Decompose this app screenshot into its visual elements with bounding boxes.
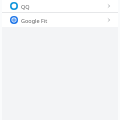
button[interactable]: Open: [106, 17, 112, 23]
button[interactable]: QQ: [2, 0, 118, 12]
button[interactable]: Open: [106, 3, 112, 9]
button[interactable]: Google Fit: [2, 13, 118, 27]
staticText: QQ: [21, 3, 106, 10]
staticText: Google Fit: [21, 17, 106, 24]
